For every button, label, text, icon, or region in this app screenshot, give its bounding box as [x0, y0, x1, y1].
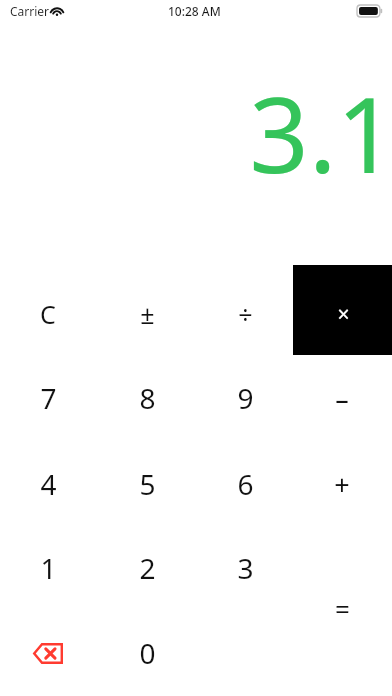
button[interactable]: 4 [9, 445, 87, 523]
staticText: 1 [40, 549, 57, 587]
button[interactable]: Plus [303, 445, 381, 523]
staticText: 2 [139, 549, 156, 587]
button[interactable]: Minus [303, 359, 381, 437]
staticText: 3 [237, 549, 254, 587]
button[interactable]: 1 [9, 529, 87, 607]
button[interactable]: Plus minus [108, 275, 186, 353]
staticText: × [337, 300, 350, 329]
staticText: 8 [139, 379, 156, 417]
staticText: C [40, 297, 56, 331]
button[interactable]: Divide [206, 275, 284, 353]
button[interactable]: Clear [9, 275, 87, 353]
staticText: ÷ [238, 297, 253, 331]
button[interactable]: 2 [108, 529, 186, 607]
staticText: 0 [139, 634, 156, 672]
staticText: 3.1 [249, 62, 392, 182]
button[interactable]: 8 [108, 359, 186, 437]
button[interactable]: Backspace [12, 617, 84, 689]
button[interactable]: 3 [206, 529, 284, 607]
staticText: 4 [40, 465, 57, 503]
button[interactable]: 9 [206, 359, 284, 437]
button[interactable]: 7 [9, 359, 87, 437]
staticText: + [334, 466, 350, 503]
staticText: 7 [40, 379, 57, 417]
staticText: 10:28 AM [168, 3, 221, 19]
button[interactable]: 6 [206, 445, 284, 523]
button[interactable]: 0 [108, 614, 186, 692]
staticText: ± [140, 297, 155, 331]
staticText: – [335, 380, 349, 417]
staticText: = [335, 591, 350, 626]
staticText: 5 [139, 465, 156, 503]
button[interactable]: Multiply [293, 265, 392, 355]
staticText: 9 [237, 379, 254, 417]
button[interactable]: Multiply [304, 275, 382, 353]
staticText: 6 [237, 465, 254, 503]
button[interactable]: 5 [108, 445, 186, 523]
button[interactable]: Equals [303, 569, 381, 647]
staticText: Carrier [10, 3, 50, 19]
